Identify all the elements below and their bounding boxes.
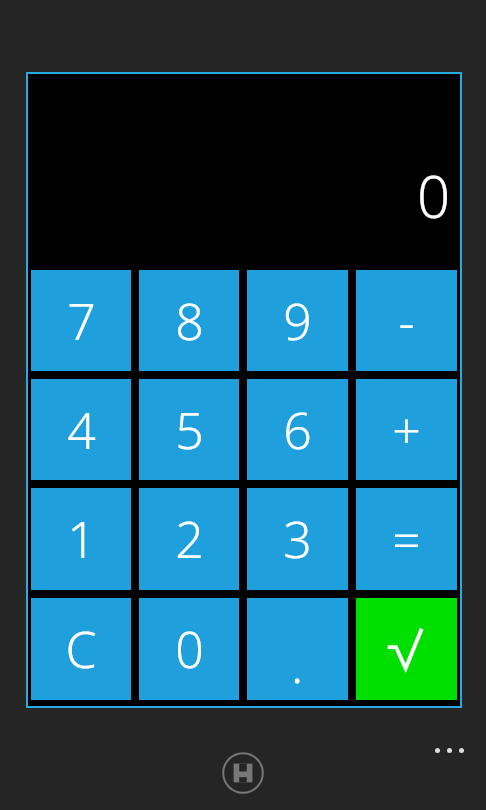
staticText: 7 (67, 287, 96, 355)
staticText: + (392, 396, 421, 464)
button[interactable]: = (356, 488, 457, 590)
button[interactable]: 9 (247, 270, 348, 371)
staticText: 0 (416, 156, 450, 235)
button[interactable]: 8 (139, 270, 239, 371)
button[interactable]: + (356, 379, 457, 480)
button[interactable]: C (31, 598, 131, 700)
button[interactable]: 5 (139, 379, 239, 480)
staticText: 1 (67, 505, 96, 573)
button[interactable]: . (247, 598, 348, 700)
staticText: 6 (283, 396, 312, 464)
staticText: - (398, 287, 415, 355)
staticText: 2 (175, 505, 204, 573)
staticText: 9 (283, 287, 312, 355)
button[interactable]: 6 (247, 379, 348, 480)
staticText: 8 (175, 287, 204, 355)
staticText: . (291, 630, 304, 698)
staticText: 0 (175, 615, 204, 683)
button[interactable]: - (356, 270, 457, 371)
button[interactable]: 2 (139, 488, 239, 590)
button[interactable]: Square root (356, 598, 457, 700)
staticText: 3 (283, 505, 312, 573)
button[interactable]: More options (424, 728, 474, 772)
button[interactable]: Save (219, 749, 267, 797)
button[interactable]: 0 (139, 598, 239, 700)
staticText: = (392, 505, 421, 573)
staticText: 5 (175, 396, 204, 464)
staticText: 4 (67, 396, 96, 464)
button[interactable]: 3 (247, 488, 348, 590)
button[interactable]: 7 (31, 270, 131, 371)
button[interactable]: 4 (31, 379, 131, 480)
staticText: C (65, 615, 97, 683)
button[interactable]: 1 (31, 488, 131, 590)
